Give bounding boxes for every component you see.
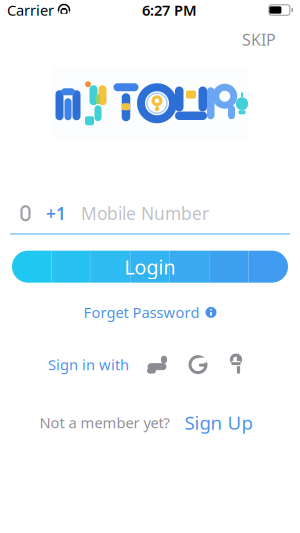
- button[interactable]: Forget Password: [71, 296, 228, 329]
- button[interactable]: Sign in with Google: [180, 350, 216, 380]
- staticText: Not a member yet?: [39, 413, 169, 432]
- button[interactable]: Sign in with Facebook: [220, 349, 252, 380]
- staticText: Carrier: [7, 0, 54, 20]
- staticText: +1: [46, 202, 66, 225]
- button[interactable]: Sign Up: [176, 404, 260, 441]
- staticText: Forget Password: [83, 303, 199, 322]
- staticText: Login: [124, 253, 175, 280]
- staticText: 6:27 PM: [142, 0, 197, 20]
- button[interactable]: Login: [12, 251, 288, 283]
- staticText: SKIP: [242, 29, 276, 50]
- button[interactable]: Sign in with Twitter: [138, 350, 176, 380]
- staticText: Sign Up: [184, 410, 252, 435]
- button[interactable]: SKIP: [232, 23, 286, 56]
- staticText: Sign in with: [48, 355, 129, 374]
- staticText: Mobile Number: [81, 202, 209, 225]
